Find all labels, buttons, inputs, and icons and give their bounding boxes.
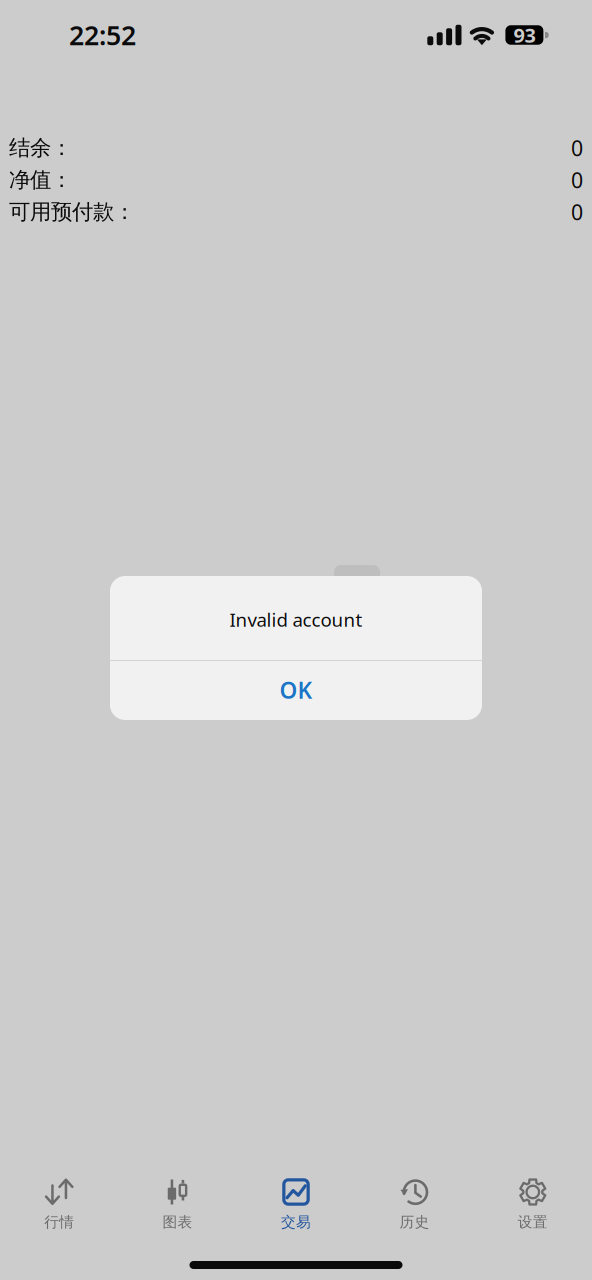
staticText: 行情	[44, 1213, 74, 1231]
staticText: 设置	[518, 1213, 548, 1231]
staticText: 交易	[281, 1213, 311, 1231]
staticText: 结余：	[9, 135, 72, 161]
button[interactable]: 历史	[355, 1175, 474, 1237]
staticText: 0	[571, 198, 583, 226]
staticText: 历史	[399, 1213, 429, 1231]
staticText: 可用预付款：	[9, 199, 135, 225]
button[interactable]: OK	[110, 661, 482, 720]
staticText: 净值：	[9, 167, 72, 193]
staticText: 0	[571, 166, 583, 194]
button[interactable]: 交易	[237, 1175, 355, 1237]
button[interactable]: 图表	[118, 1175, 237, 1237]
staticText: 图表	[163, 1213, 193, 1231]
staticText: OK	[279, 675, 312, 705]
staticText: 0	[571, 134, 583, 162]
staticText: 93	[513, 22, 535, 48]
button[interactable]: 行情	[0, 1175, 118, 1237]
staticText: 22:52	[69, 17, 136, 53]
staticText: Invalid account	[229, 607, 362, 632]
button[interactable]: 设置	[474, 1175, 592, 1237]
